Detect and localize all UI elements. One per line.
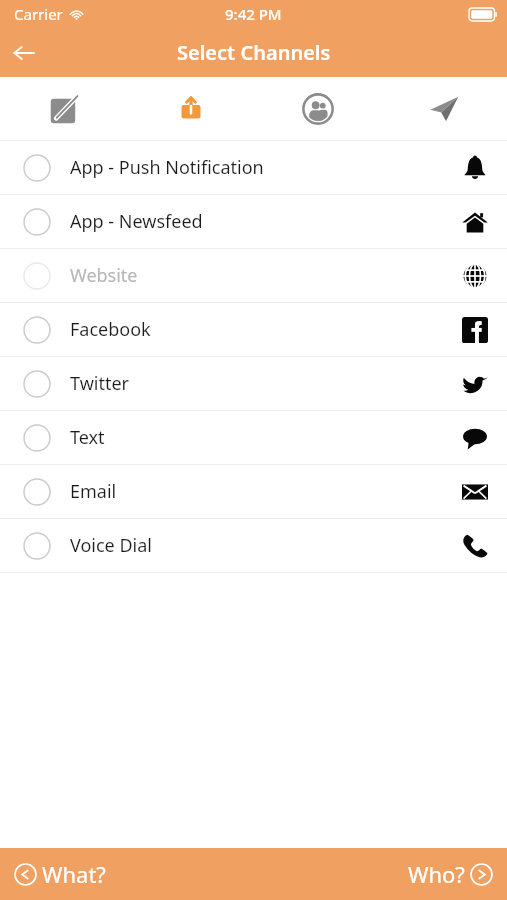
button[interactable]: Text [0, 411, 507, 464]
staticText: Text [70, 425, 105, 450]
button[interactable]: Website [0, 249, 507, 302]
button[interactable]: What? [14, 859, 106, 889]
staticText: Website [70, 263, 138, 288]
staticText: App - Newsfeed [70, 209, 203, 234]
staticText: Voice Dial [70, 533, 152, 558]
button[interactable]: Facebook [0, 303, 507, 356]
staticText: Who? [408, 859, 465, 889]
staticText: Carrier [14, 4, 63, 24]
button[interactable]: Back [0, 29, 48, 77]
button[interactable]: Who? [408, 859, 493, 889]
button[interactable]: Contacts [254, 77, 381, 140]
button[interactable]: App - Newsfeed [0, 195, 507, 248]
button[interactable]: Email [0, 465, 507, 518]
staticText: Email [70, 479, 117, 504]
staticText: App - Push Notification [70, 155, 264, 180]
staticText: Facebook [70, 317, 151, 342]
staticText: Select Channels [177, 39, 331, 66]
button[interactable]: App - Push Notification [0, 141, 507, 194]
button[interactable]: Twitter [0, 357, 507, 410]
staticText: What? [42, 859, 106, 889]
button[interactable]: Compose [0, 77, 127, 140]
button[interactable]: Voice Dial [0, 519, 507, 572]
staticText: 9:42 PM [225, 4, 282, 24]
button[interactable]: Send [381, 77, 507, 140]
button[interactable]: Share [127, 77, 254, 140]
staticText: Twitter [70, 371, 130, 396]
